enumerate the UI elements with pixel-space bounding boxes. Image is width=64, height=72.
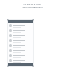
staticText: and management	[22, 5, 43, 8]
button[interactable]	[7, 28, 34, 33]
button[interactable]	[7, 63, 34, 67]
button[interactable]	[7, 33, 34, 38]
button[interactable]	[7, 43, 34, 48]
button[interactable]	[7, 19, 34, 23]
button[interactable]	[7, 58, 34, 63]
staticText: All are at a chat	[23, 2, 41, 5]
button[interactable]	[7, 38, 34, 43]
button[interactable]	[7, 23, 34, 28]
button[interactable]	[7, 48, 34, 53]
button[interactable]	[7, 53, 34, 58]
